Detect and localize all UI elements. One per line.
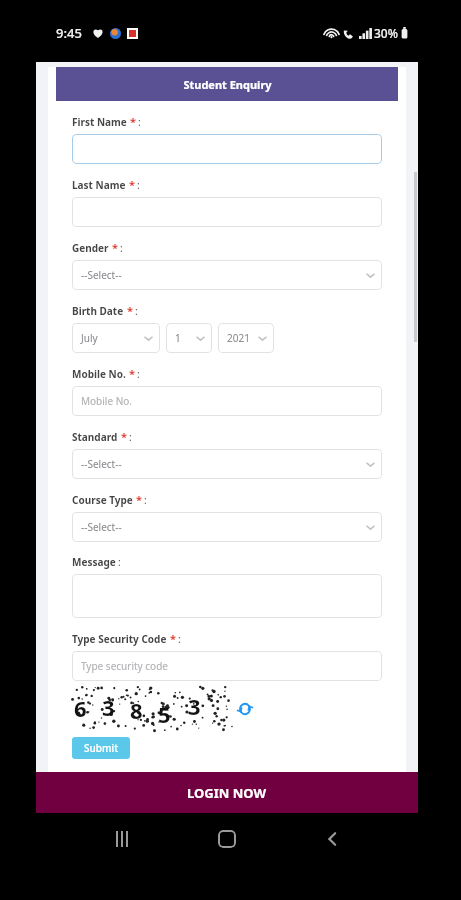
button[interactable]: Back: [313, 819, 353, 859]
staticText: Last Name: [72, 178, 126, 192]
button[interactable]: --Select--: [72, 449, 382, 479]
staticText: Student Enquiry: [183, 77, 272, 92]
button[interactable]: [72, 197, 382, 227]
staticText: *: [112, 240, 118, 255]
staticText: Submit: [84, 741, 118, 755]
button[interactable]: Type security code: [72, 651, 382, 681]
staticText: :: [178, 632, 181, 646]
staticText: --Select--: [81, 520, 122, 534]
staticText: Birth Date: [72, 304, 124, 318]
button[interactable]: [72, 134, 382, 164]
button[interactable]: Recent apps: [102, 819, 142, 859]
button[interactable]: Mobile No.: [72, 386, 382, 416]
staticText: :: [137, 178, 140, 192]
staticText: *: [136, 492, 142, 507]
staticText: Standard: [72, 430, 118, 444]
button[interactable]: Home: [207, 819, 247, 859]
staticText: Mobile No.: [72, 367, 126, 381]
staticText: Mobile No.: [81, 394, 132, 408]
staticText: Course Type: [72, 493, 133, 507]
staticText: 5: [158, 699, 171, 729]
staticText: Type security code: [81, 659, 168, 673]
staticText: 3: [188, 691, 201, 721]
staticText: *: [130, 114, 136, 129]
staticText: :: [118, 555, 121, 569]
staticText: :: [137, 367, 140, 381]
staticText: *: [129, 366, 135, 381]
staticText: :: [144, 493, 147, 507]
staticText: --Select--: [81, 457, 122, 471]
staticText: 2021: [227, 331, 250, 345]
button[interactable]: Refresh captcha: [236, 700, 254, 718]
staticText: :: [138, 115, 141, 129]
staticText: *: [121, 429, 127, 444]
staticText: LOGIN NOW: [187, 784, 267, 802]
staticText: Type Security Code: [72, 632, 167, 646]
staticText: *: [127, 303, 133, 318]
staticText: 30%: [374, 25, 398, 41]
staticText: 3: [102, 692, 115, 722]
staticText: Message: [72, 555, 116, 569]
button[interactable]: --Select--: [72, 512, 382, 542]
staticText: :: [135, 304, 138, 318]
button[interactable]: Student Enquiry: [56, 67, 398, 101]
staticText: *: [129, 177, 135, 192]
staticText: --Select--: [81, 268, 122, 282]
staticText: 1: [175, 331, 181, 345]
button[interactable]: 2021: [218, 323, 274, 353]
staticText: Gender: [72, 241, 109, 255]
staticText: July: [81, 331, 98, 345]
button[interactable]: [72, 574, 382, 618]
staticText: 6: [74, 693, 87, 723]
staticText: :: [120, 241, 123, 255]
button[interactable]: 1: [166, 323, 212, 353]
button[interactable]: July: [72, 323, 160, 353]
staticText: 8: [130, 695, 143, 725]
staticText: 9:45: [56, 24, 82, 42]
button[interactable]: Submit: [72, 737, 130, 759]
staticText: :: [129, 430, 132, 444]
staticText: First Name: [72, 115, 127, 129]
button[interactable]: --Select--: [72, 260, 382, 290]
staticText: *: [170, 631, 176, 646]
button[interactable]: LOGIN NOW: [36, 772, 418, 813]
